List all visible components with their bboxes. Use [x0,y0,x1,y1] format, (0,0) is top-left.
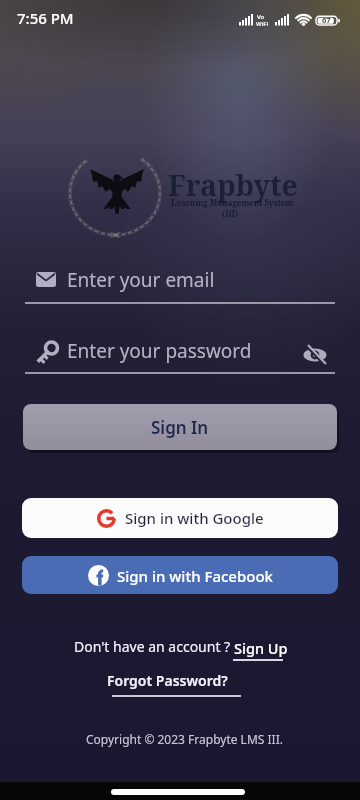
staticText: Sign in with Facebook [117,566,273,586]
staticText: Enter your password [67,338,252,364]
staticText: Sign In [151,416,209,439]
staticText: (III) [222,208,239,219]
staticText: 67 [322,15,331,25]
staticText: Sign in with Google [125,508,264,528]
button[interactable] [25,332,335,374]
staticText: Frapbyte [168,166,298,205]
staticText: WiFi [256,20,269,28]
button[interactable] [25,262,335,304]
staticText: Sign Up [234,638,288,658]
staticText: 7:56 PM [17,8,74,28]
staticText: Vo [257,13,265,21]
button[interactable]: Sign In [23,404,337,450]
button[interactable]: Sign in with Facebook [22,556,338,594]
button[interactable]: Forgot Password? [107,671,236,690]
button[interactable]: Sign Up [230,636,284,656]
staticText: Enter your email [67,267,215,293]
staticText: Forgot Password? [107,671,228,690]
staticText: Learning Management System [171,197,294,208]
staticText: Don't have an account ? [74,637,231,656]
staticText: Copyright © 2023 Frapbyte LMS III. [86,731,283,747]
button[interactable]: Sign in with Google [22,498,338,538]
